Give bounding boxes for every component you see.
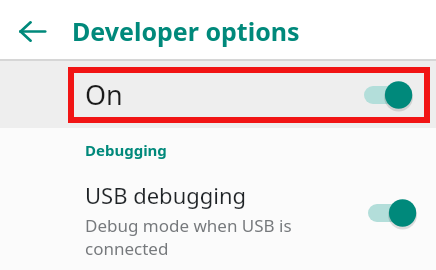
staticText: Debug mode when USB is	[85, 214, 292, 237]
staticText: On	[85, 76, 123, 113]
button[interactable]: On	[0, 61, 436, 128]
button[interactable]: Navigate up	[15, 14, 49, 48]
staticText: USB debugging	[85, 180, 247, 210]
button[interactable]: USB debugging	[0, 172, 436, 270]
staticText: Developer options	[72, 14, 300, 48]
button[interactable]: Switch on	[368, 198, 420, 228]
staticText: connected	[85, 237, 169, 260]
button[interactable]: Switch on	[364, 80, 416, 110]
staticText: Debugging	[85, 140, 167, 160]
